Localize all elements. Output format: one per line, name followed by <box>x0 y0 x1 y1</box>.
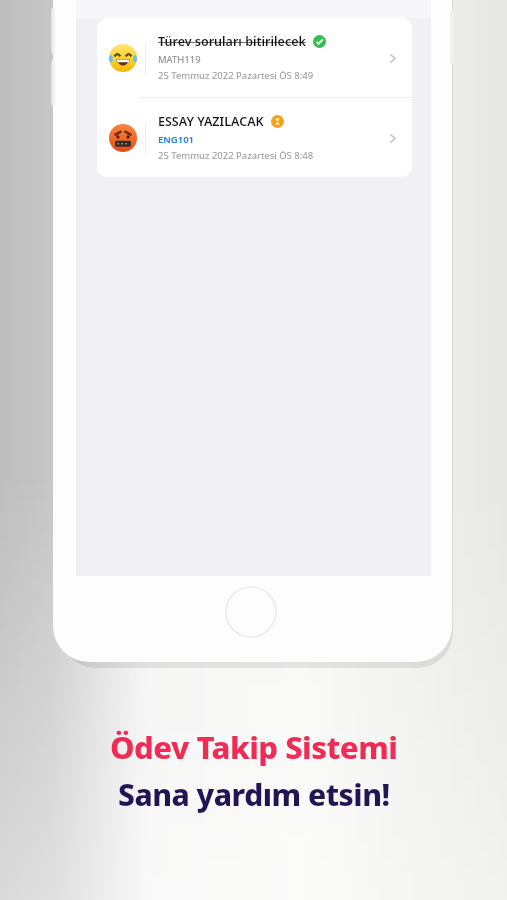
staticText: MATH119 <box>158 53 201 66</box>
staticText: 25 Temmuz 2022 Pazartesi ÖS 8:49 <box>158 69 314 82</box>
staticText: ESSAY YAZILACAK <box>158 113 264 130</box>
button[interactable]: Home <box>225 586 277 638</box>
button[interactable]: Open task <box>380 126 404 150</box>
staticText: Sana yardım etsin! <box>118 774 390 815</box>
button[interactable]: Türev soruları bitirilecek <box>97 18 412 97</box>
staticText: 25 Temmuz 2022 Pazartesi ÖS 8:48 <box>158 149 314 162</box>
button[interactable]: ESSAY YAZILACAK <box>97 98 412 177</box>
staticText: ENG101 <box>158 133 195 146</box>
staticText: Türev soruları bitirilecek <box>158 33 306 50</box>
staticText: Ödev Takip Sistemi <box>110 726 398 768</box>
button[interactable]: Open task <box>380 46 404 70</box>
